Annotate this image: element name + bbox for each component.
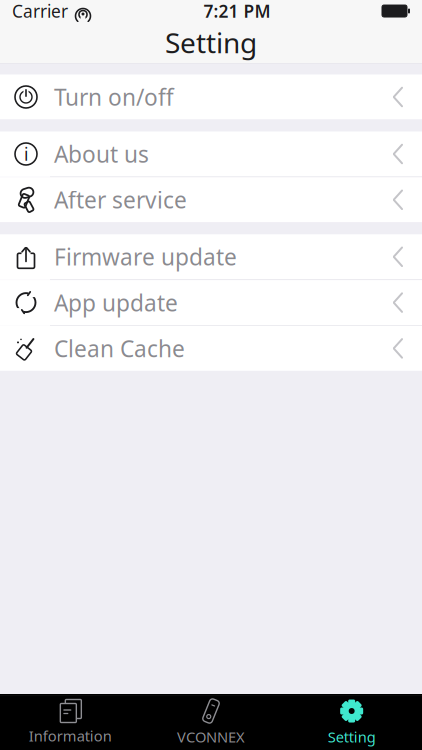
staticText: About us	[54, 139, 149, 169]
button[interactable]: App update	[0, 280, 422, 325]
staticText: VCONNEX	[177, 727, 245, 746]
staticText: i	[24, 142, 28, 165]
button[interactable]: VCONNEX	[141, 696, 281, 748]
staticText: Turn on/off	[54, 82, 174, 112]
button[interactable]: Setting	[281, 696, 422, 748]
staticText: 7:21 PM	[203, 0, 270, 22]
button[interactable]: Information	[0, 696, 141, 748]
button[interactable]: Clean Cache	[0, 326, 422, 371]
button[interactable]: Firmware update	[0, 234, 422, 279]
button[interactable]: After service	[0, 177, 422, 222]
staticText: Information	[29, 726, 112, 745]
staticText: Firmware update	[54, 242, 237, 272]
staticText: Carrier	[12, 0, 68, 22]
staticText: After service	[54, 185, 187, 215]
button[interactable]: i	[0, 131, 422, 176]
button[interactable]: Turn on/off	[0, 74, 422, 119]
staticText: App update	[54, 287, 178, 318]
staticText: Clean Cache	[54, 333, 185, 363]
staticText: Setting	[328, 727, 376, 746]
staticText: Setting	[165, 24, 257, 61]
